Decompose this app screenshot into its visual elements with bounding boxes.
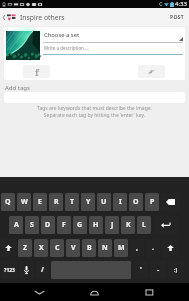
staticText: O	[133, 197, 139, 207]
button[interactable]: M	[114, 239, 128, 257]
button[interactable]: Choose a set	[43, 29, 183, 42]
button[interactable]: :)	[168, 261, 184, 279]
staticText: I	[119, 197, 122, 207]
staticText: D	[45, 220, 51, 230]
staticText: Q	[5, 197, 11, 207]
staticText: ?123	[4, 267, 15, 274]
button[interactable]: -	[150, 261, 166, 279]
button[interactable]: L	[137, 216, 151, 234]
staticText: H	[93, 220, 99, 230]
staticText: M	[118, 243, 125, 253]
staticText: T	[70, 197, 75, 207]
staticText: -	[157, 265, 160, 275]
staticText: POST	[170, 14, 184, 21]
staticText: Y	[86, 197, 91, 207]
staticText: Choose a set	[44, 31, 80, 39]
staticText: S	[30, 220, 34, 230]
staticText: f	[35, 66, 39, 78]
button[interactable]: Z	[18, 239, 32, 257]
button[interactable]: Home	[67, 283, 122, 301]
staticText: /	[41, 265, 44, 275]
button[interactable]: K	[121, 216, 135, 234]
staticText: U	[101, 197, 107, 207]
staticText: Add tags	[5, 84, 30, 92]
button[interactable]: /	[36, 261, 49, 279]
button[interactable]: C	[50, 239, 64, 257]
staticText: J	[111, 220, 114, 230]
staticText: Z	[23, 243, 28, 253]
button[interactable]: Back	[12, 283, 67, 301]
button[interactable]: X	[34, 239, 48, 257]
staticText: A	[14, 220, 19, 230]
button[interactable]: POST	[164, 8, 189, 26]
button[interactable]: G	[73, 216, 87, 234]
staticText: C	[55, 243, 60, 253]
button[interactable]: A	[9, 216, 23, 234]
button[interactable]: Y	[81, 193, 95, 211]
staticText: :)	[174, 267, 178, 274]
button[interactable]: '	[133, 261, 148, 279]
button[interactable]: B	[82, 239, 96, 257]
staticText: 4:33	[175, 0, 187, 8]
staticText: R	[54, 197, 59, 207]
button[interactable]: ,	[130, 239, 144, 257]
button[interactable]: P	[145, 193, 159, 211]
button[interactable]: shift	[162, 239, 178, 257]
staticText: Inspire others	[20, 13, 65, 22]
staticText: ,	[136, 243, 138, 253]
button[interactable]: N	[98, 239, 112, 257]
staticText: W	[21, 197, 28, 207]
button[interactable]: I	[113, 193, 127, 211]
button[interactable]: S	[25, 216, 39, 234]
button[interactable]: W	[17, 193, 31, 211]
staticText: B	[87, 243, 92, 253]
staticText: K	[126, 220, 131, 230]
button[interactable]: Navigate up	[0, 8, 7, 26]
staticText: L	[142, 220, 146, 230]
staticText: G	[77, 220, 83, 230]
staticText: .	[152, 243, 154, 253]
button[interactable]: Recent apps	[122, 283, 177, 301]
button[interactable]: Write a description	[43, 42, 183, 53]
staticText: Write a description ...	[44, 45, 89, 51]
staticText: Tags are keywords that must describe the…	[0, 105, 189, 118]
button[interactable]: Selected image	[6, 31, 40, 60]
button[interactable]: V	[66, 239, 80, 257]
button[interactable]: bksp	[161, 193, 180, 211]
button[interactable]: O	[129, 193, 143, 211]
button[interactable]: enter	[153, 216, 178, 234]
staticText: E	[38, 197, 42, 207]
staticText: P	[150, 197, 155, 207]
button[interactable]: J	[105, 216, 119, 234]
button[interactable]: U	[97, 193, 111, 211]
button[interactable]: mic	[19, 261, 34, 279]
button[interactable]: ?123	[1, 261, 17, 279]
staticText: '	[140, 265, 142, 275]
button[interactable]: F	[57, 216, 71, 234]
button[interactable]: Share on Facebook	[23, 65, 50, 78]
staticText: X	[39, 243, 44, 253]
staticText: F	[62, 220, 66, 230]
button[interactable]: H	[89, 216, 103, 234]
button[interactable]: .	[146, 239, 160, 257]
button[interactable]: Q	[1, 193, 15, 211]
button[interactable]: D	[41, 216, 55, 234]
staticText: N	[102, 243, 108, 253]
button[interactable]: R	[49, 193, 63, 211]
staticText: V	[71, 243, 76, 253]
button[interactable]: Share on Twitter	[138, 65, 165, 78]
button[interactable]: shift	[1, 239, 16, 257]
button[interactable]: E	[33, 193, 47, 211]
button[interactable]: T	[65, 193, 79, 211]
